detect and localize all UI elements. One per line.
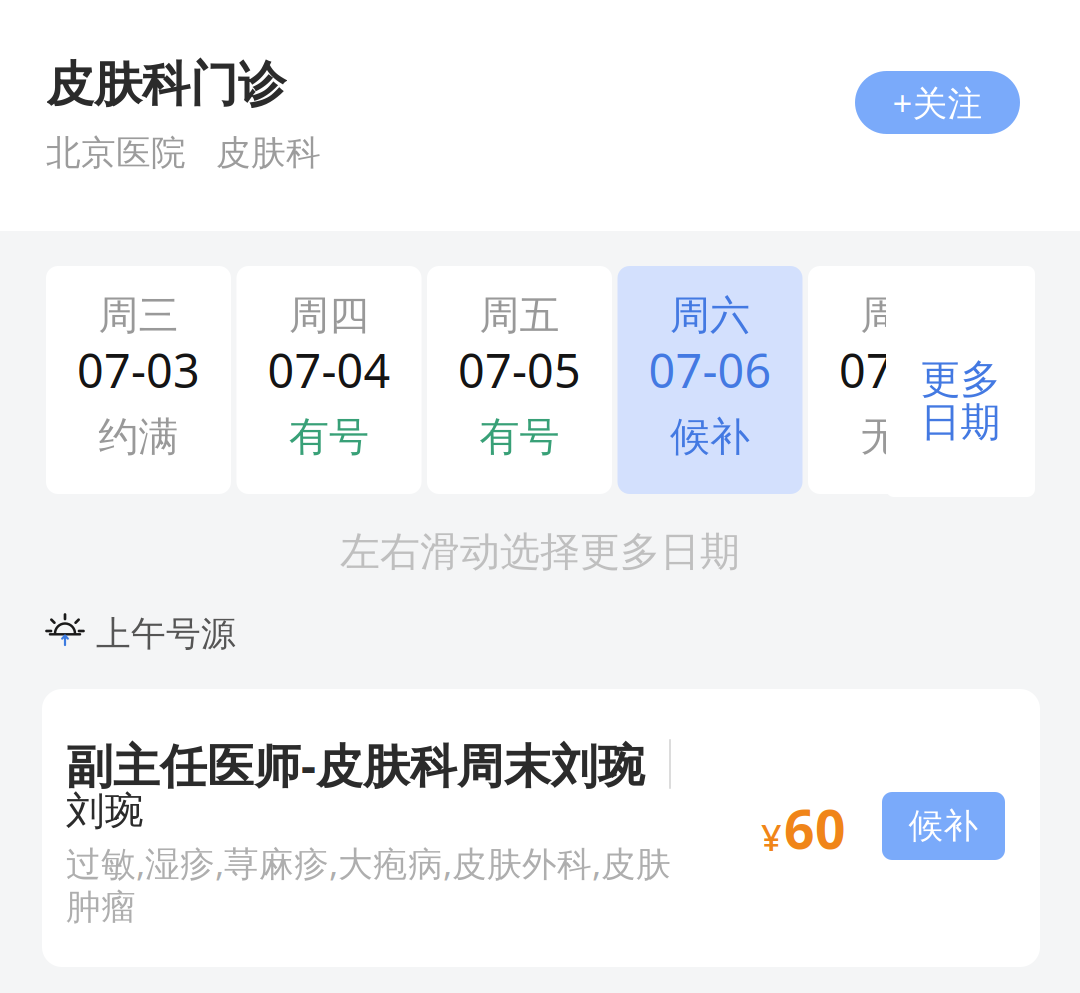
button[interactable]: 周六 bbox=[617, 266, 802, 494]
staticText: 07-03 bbox=[77, 339, 200, 401]
staticText: 上午号源 bbox=[96, 613, 236, 655]
staticText: 有号 bbox=[289, 412, 369, 461]
staticText: 候补 bbox=[670, 412, 750, 461]
staticText: 07-04 bbox=[267, 339, 390, 401]
button[interactable]: 候补 bbox=[882, 792, 1005, 860]
staticText: 周日 bbox=[860, 291, 940, 340]
staticText: 皮肤科门诊 bbox=[46, 55, 286, 114]
staticText: 07-06 bbox=[648, 339, 771, 401]
button[interactable]: 更多 bbox=[886, 266, 1035, 497]
button[interactable]: 周日 bbox=[808, 266, 993, 494]
staticText: 周五 bbox=[479, 291, 559, 340]
staticText: 无号 bbox=[860, 412, 940, 461]
staticText: 有号 bbox=[479, 412, 559, 461]
staticText: 日期 bbox=[920, 398, 1000, 447]
staticText: 07-07 bbox=[839, 339, 962, 401]
staticText: 周六 bbox=[670, 291, 750, 340]
staticText: 左右滑动选择更多日期 bbox=[340, 527, 740, 576]
staticText: 副主任医师-皮肤科周末刘琬 bbox=[66, 734, 645, 796]
staticText: 北京医院 皮肤科 bbox=[46, 132, 321, 174]
button[interactable]: +关注 bbox=[855, 71, 1020, 134]
staticText: 约满 bbox=[98, 412, 178, 461]
staticText: 刘琬 bbox=[66, 787, 144, 835]
button[interactable]: 周四 bbox=[236, 266, 421, 494]
staticText: 周三 bbox=[98, 291, 178, 340]
button[interactable]: 周三 bbox=[46, 266, 231, 494]
staticText: 60 bbox=[784, 793, 846, 864]
button[interactable]: 周五 bbox=[427, 266, 612, 494]
staticText: ¥ bbox=[761, 813, 782, 861]
staticText: 07-05 bbox=[458, 339, 581, 401]
staticText: 候补 bbox=[908, 805, 978, 847]
staticText: 过敏,湿疹,荨麻疹,大疱病,皮肤外科,皮肤肿瘤 bbox=[66, 840, 671, 929]
staticText: 周四 bbox=[289, 291, 369, 340]
staticText: 更多 bbox=[920, 355, 1000, 404]
staticText: +关注 bbox=[892, 79, 982, 125]
